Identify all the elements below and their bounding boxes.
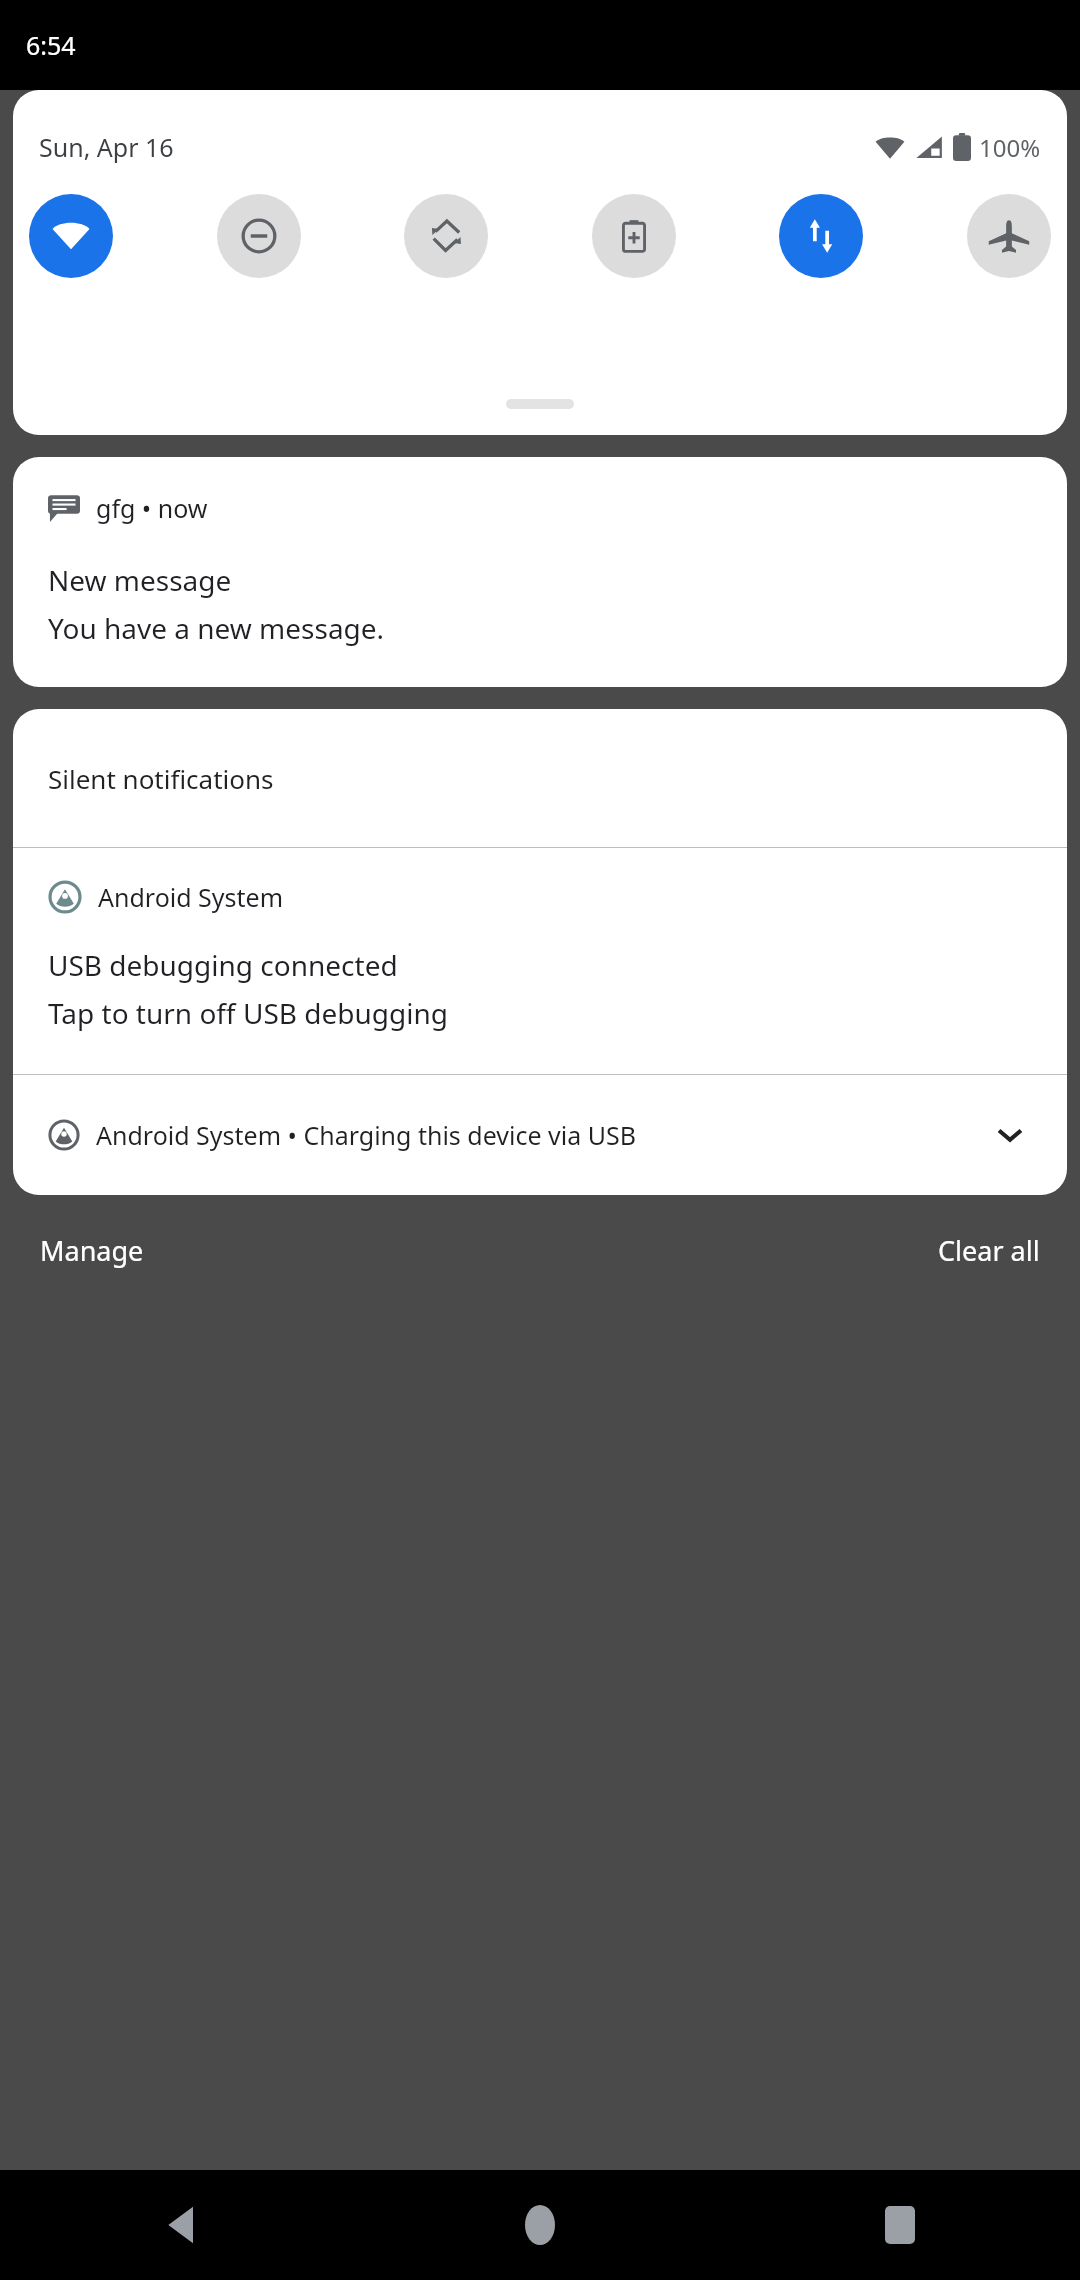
staticText: 6:54 xyxy=(26,28,76,62)
staticText: Sun, Apr 16 xyxy=(39,130,174,164)
button[interactable]: Battery saver xyxy=(592,194,676,278)
staticText: Android System • Charging this device vi… xyxy=(96,1118,636,1152)
button[interactable]: Clear all xyxy=(932,1220,1046,1281)
button[interactable]: Manage xyxy=(34,1220,150,1281)
staticText: Clear all xyxy=(938,1232,1040,1269)
staticText: USB debugging connected xyxy=(48,946,398,984)
button[interactable]: Back xyxy=(0,2170,360,2280)
staticText: Silent notifications xyxy=(48,761,274,796)
staticText: 100% xyxy=(979,131,1041,164)
button[interactable]: Airplane mode xyxy=(967,194,1051,278)
button[interactable]: Auto-rotate xyxy=(404,194,488,278)
button[interactable]: Home xyxy=(360,2170,720,2280)
button[interactable]: Android System xyxy=(13,848,1067,1074)
staticText: You have a new message. xyxy=(48,609,385,647)
button[interactable]: Silent notifications xyxy=(13,709,1067,847)
button[interactable]: Recent apps xyxy=(720,2170,1080,2280)
staticText: Tap to turn off USB debugging xyxy=(48,994,448,1032)
other: Expand xyxy=(983,1108,1037,1162)
button[interactable]: Android System • Charging this device vi… xyxy=(13,1075,1067,1195)
button[interactable]: gfg • now xyxy=(13,457,1067,687)
button[interactable]: Mobile data xyxy=(779,194,863,278)
staticText: New message xyxy=(48,561,232,599)
staticText: Manage xyxy=(40,1232,144,1269)
staticText: Android System xyxy=(98,880,284,914)
button[interactable]: Wi-Fi xyxy=(29,194,113,278)
staticText: gfg • now xyxy=(96,491,208,525)
button[interactable]: Do not disturb xyxy=(217,194,301,278)
